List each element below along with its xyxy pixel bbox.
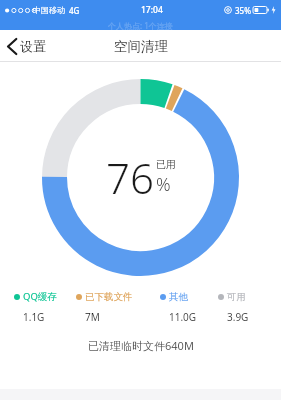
- staticText: 1.1G: [23, 310, 45, 324]
- staticText: 3.9G: [227, 310, 249, 324]
- staticText: 17:04: [141, 4, 163, 16]
- staticText: 中国移动: [33, 5, 65, 15]
- staticText: 已下载文件: [85, 291, 133, 303]
- staticText: QQ缓存: [23, 290, 57, 303]
- staticText: 7M: [85, 310, 100, 324]
- staticText: 11.0G: [169, 310, 197, 324]
- button[interactable]: 已下载文件: [76, 291, 160, 303]
- staticText: 空间清理: [114, 38, 168, 55]
- button[interactable]: 设置: [0, 34, 56, 58]
- staticText: 已清理临时文件640M: [88, 338, 194, 353]
- staticText: 可用: [227, 291, 246, 303]
- staticText: 个人热点: 1个连接: [108, 20, 173, 30]
- staticText: 35%: [235, 5, 251, 16]
- button[interactable]: 其他: [160, 291, 218, 303]
- staticText: 已用: [156, 158, 176, 171]
- staticText: %: [156, 172, 171, 197]
- staticText: 76: [106, 149, 154, 206]
- staticText: 其他: [169, 291, 188, 303]
- staticText: 设置: [20, 38, 46, 54]
- button[interactable]: QQ缓存: [14, 290, 76, 303]
- button[interactable]: 可用: [218, 291, 267, 303]
- staticText: 4G: [69, 5, 80, 16]
